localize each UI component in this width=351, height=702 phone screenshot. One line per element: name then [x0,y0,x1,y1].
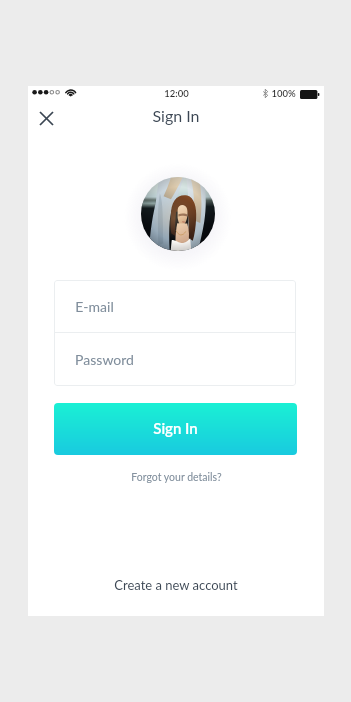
button[interactable]: Sign In [54,403,297,455]
staticText: Sign In [152,106,200,125]
staticText: 100% [271,88,296,99]
staticText: Password [75,351,134,368]
button[interactable]: Close [28,100,64,136]
staticText: Create a new account [114,577,238,593]
button[interactable]: Forgot your details? [123,468,230,487]
button[interactable]: Password [54,333,296,386]
button[interactable]: E-mail [54,280,296,332]
staticText: Sign In [153,419,198,437]
staticText: E-mail [75,298,114,315]
staticText: 12:00 [164,88,189,99]
button[interactable]: Create a new account [104,573,248,597]
staticText: Forgot your details? [131,471,222,484]
